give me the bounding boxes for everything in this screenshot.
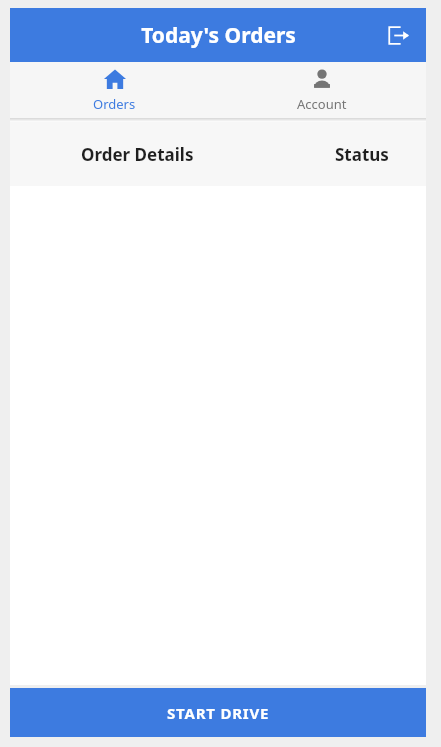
staticText: Status — [335, 143, 389, 166]
button[interactable]: Orders — [10, 62, 218, 118]
staticText: START DRIVE — [167, 703, 270, 723]
button[interactable]: Account — [218, 62, 426, 118]
staticText: Today's Orders — [141, 21, 296, 50]
staticText: Orders — [93, 95, 136, 113]
staticText: Order Details — [81, 143, 194, 166]
button[interactable]: Log out — [376, 13, 420, 57]
button[interactable]: START DRIVE — [10, 688, 426, 737]
staticText: Account — [297, 95, 347, 113]
